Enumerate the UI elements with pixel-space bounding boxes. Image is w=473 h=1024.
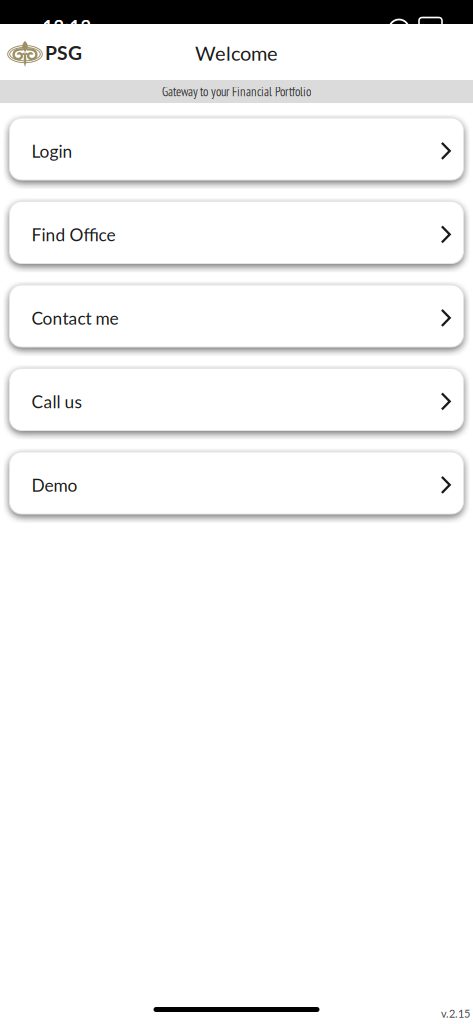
staticText: 12:12 — [42, 16, 91, 37]
button[interactable]: Login — [9, 118, 463, 180]
staticText: PSG — [45, 41, 82, 64]
button[interactable]: Demo — [9, 452, 463, 514]
staticText: Call us — [31, 391, 82, 412]
staticText: Gateway to your Financial Portfolio — [162, 83, 311, 100]
button[interactable]: Find Office — [9, 201, 463, 263]
staticText: Find Office — [31, 224, 115, 245]
staticText: v.2.15 — [441, 1007, 470, 1020]
staticText: Demo — [31, 475, 77, 495]
staticText: Login — [31, 141, 72, 161]
button[interactable]: Contact me — [9, 285, 463, 347]
staticText: Welcome — [195, 41, 278, 65]
staticText: Contact me — [31, 308, 118, 328]
button[interactable]: Call us — [9, 368, 463, 430]
